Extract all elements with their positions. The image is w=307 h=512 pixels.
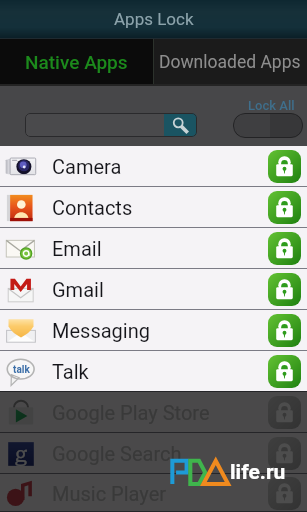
button[interactable]: g: [0, 433, 307, 474]
button[interactable]: Email: [0, 228, 307, 269]
button[interactable]: Lock Email: [268, 232, 301, 265]
button[interactable]: Messaging: [0, 310, 307, 351]
button[interactable]: Lock Google Play Store: [268, 396, 301, 429]
staticText: life.ru: [230, 460, 286, 485]
other: Search: [164, 113, 197, 137]
staticText: talk: [13, 364, 30, 376]
staticText: Email: [52, 237, 102, 260]
button[interactable]: Gmail: [0, 269, 307, 310]
staticText: Camera: [52, 155, 122, 178]
button[interactable]: Lock Google Search: [268, 437, 301, 470]
staticText: Gmail: [52, 278, 104, 301]
button[interactable]: Lock Camera: [268, 150, 301, 183]
button[interactable]: Camera: [0, 146, 307, 187]
button[interactable]: Music Player: [0, 474, 307, 512]
button[interactable]: Contacts: [0, 187, 307, 228]
button[interactable]: Lock Talk: [268, 355, 301, 388]
button[interactable]: talk: [0, 351, 307, 392]
button[interactable]: Downloaded Apps: [153, 38, 307, 86]
button[interactable]: Lock Contacts: [268, 191, 301, 224]
staticText: Lock All: [248, 98, 295, 113]
staticText: Downloaded Apps: [159, 52, 301, 73]
staticText: Messaging: [52, 319, 150, 342]
staticText: Music Player: [52, 482, 167, 505]
staticText: Apps Lock: [114, 9, 194, 29]
button[interactable]: Google Play Store: [0, 392, 307, 433]
staticText: g: [15, 442, 27, 467]
staticText: Google Search: [52, 442, 182, 465]
button[interactable]: Lock Messaging: [268, 314, 301, 347]
button[interactable]: Lock All toggle: [233, 113, 303, 138]
staticText: Contacts: [52, 196, 133, 219]
staticText: Native Apps: [25, 51, 128, 73]
button[interactable]: Lock Gmail: [268, 273, 301, 306]
staticText: Talk: [52, 360, 89, 383]
staticText: Google Play Store: [52, 401, 210, 424]
button[interactable]: Lock Music Player: [268, 477, 301, 510]
button[interactable]: Native Apps: [0, 38, 153, 86]
button[interactable]: Search: [25, 113, 197, 137]
